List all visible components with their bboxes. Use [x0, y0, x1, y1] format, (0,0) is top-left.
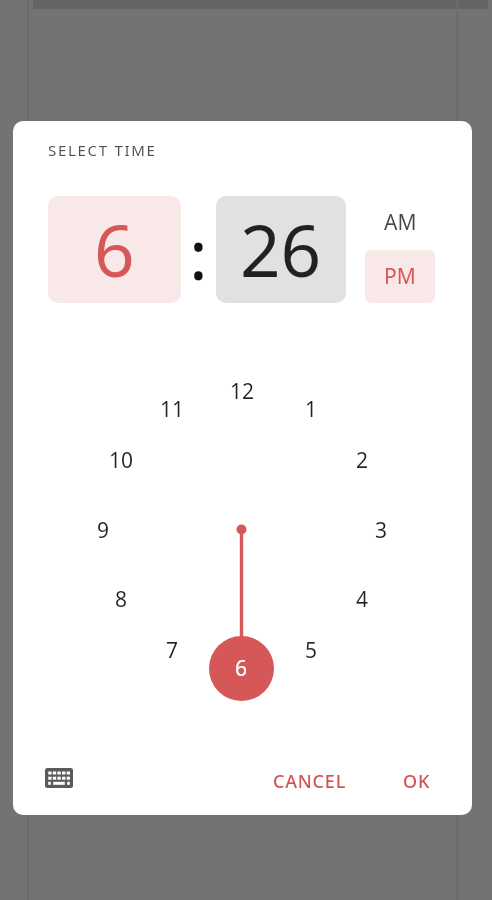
button[interactable]: 1: [287, 385, 335, 433]
staticText: 6: [94, 201, 135, 298]
button[interactable]: AM: [365, 196, 435, 249]
staticText: 8: [115, 585, 128, 614]
button[interactable]: 9: [79, 506, 127, 554]
staticText: :: [189, 205, 208, 300]
button[interactable]: 6: [209, 636, 274, 701]
staticText: 3: [375, 516, 388, 545]
button[interactable]: [35, 754, 83, 802]
button[interactable]: PM: [365, 250, 435, 303]
staticText: CANCEL: [273, 769, 347, 794]
staticText: 12: [230, 377, 255, 406]
staticText: 9: [97, 516, 110, 545]
staticText: PM: [384, 262, 416, 291]
button[interactable]: 10: [97, 436, 145, 484]
button[interactable]: 8: [97, 575, 145, 623]
button[interactable]: 3: [357, 506, 405, 554]
staticText: 6: [235, 654, 248, 683]
button[interactable]: 12: [218, 367, 266, 415]
button[interactable]: 4: [338, 575, 386, 623]
staticText: 2: [356, 446, 369, 475]
staticText: 10: [109, 446, 134, 475]
staticText: OK: [403, 769, 431, 794]
staticText: 11: [160, 395, 185, 424]
button[interactable]: 6: [48, 196, 181, 303]
button[interactable]: 7: [148, 626, 196, 674]
button[interactable]: 2: [338, 436, 386, 484]
button[interactable]: CANCEL: [260, 757, 360, 805]
button[interactable]: 26: [216, 196, 346, 303]
staticText: 7: [166, 636, 179, 665]
staticText: AM: [384, 208, 417, 237]
staticText: 1: [305, 395, 318, 424]
button[interactable]: OK: [385, 757, 449, 805]
button[interactable]: 5: [287, 626, 335, 674]
staticText: 5: [305, 636, 318, 665]
staticText: 4: [356, 585, 369, 614]
staticText: 26: [240, 201, 322, 298]
staticText: SELECT TIME: [48, 140, 157, 160]
button[interactable]: 11: [148, 385, 196, 433]
